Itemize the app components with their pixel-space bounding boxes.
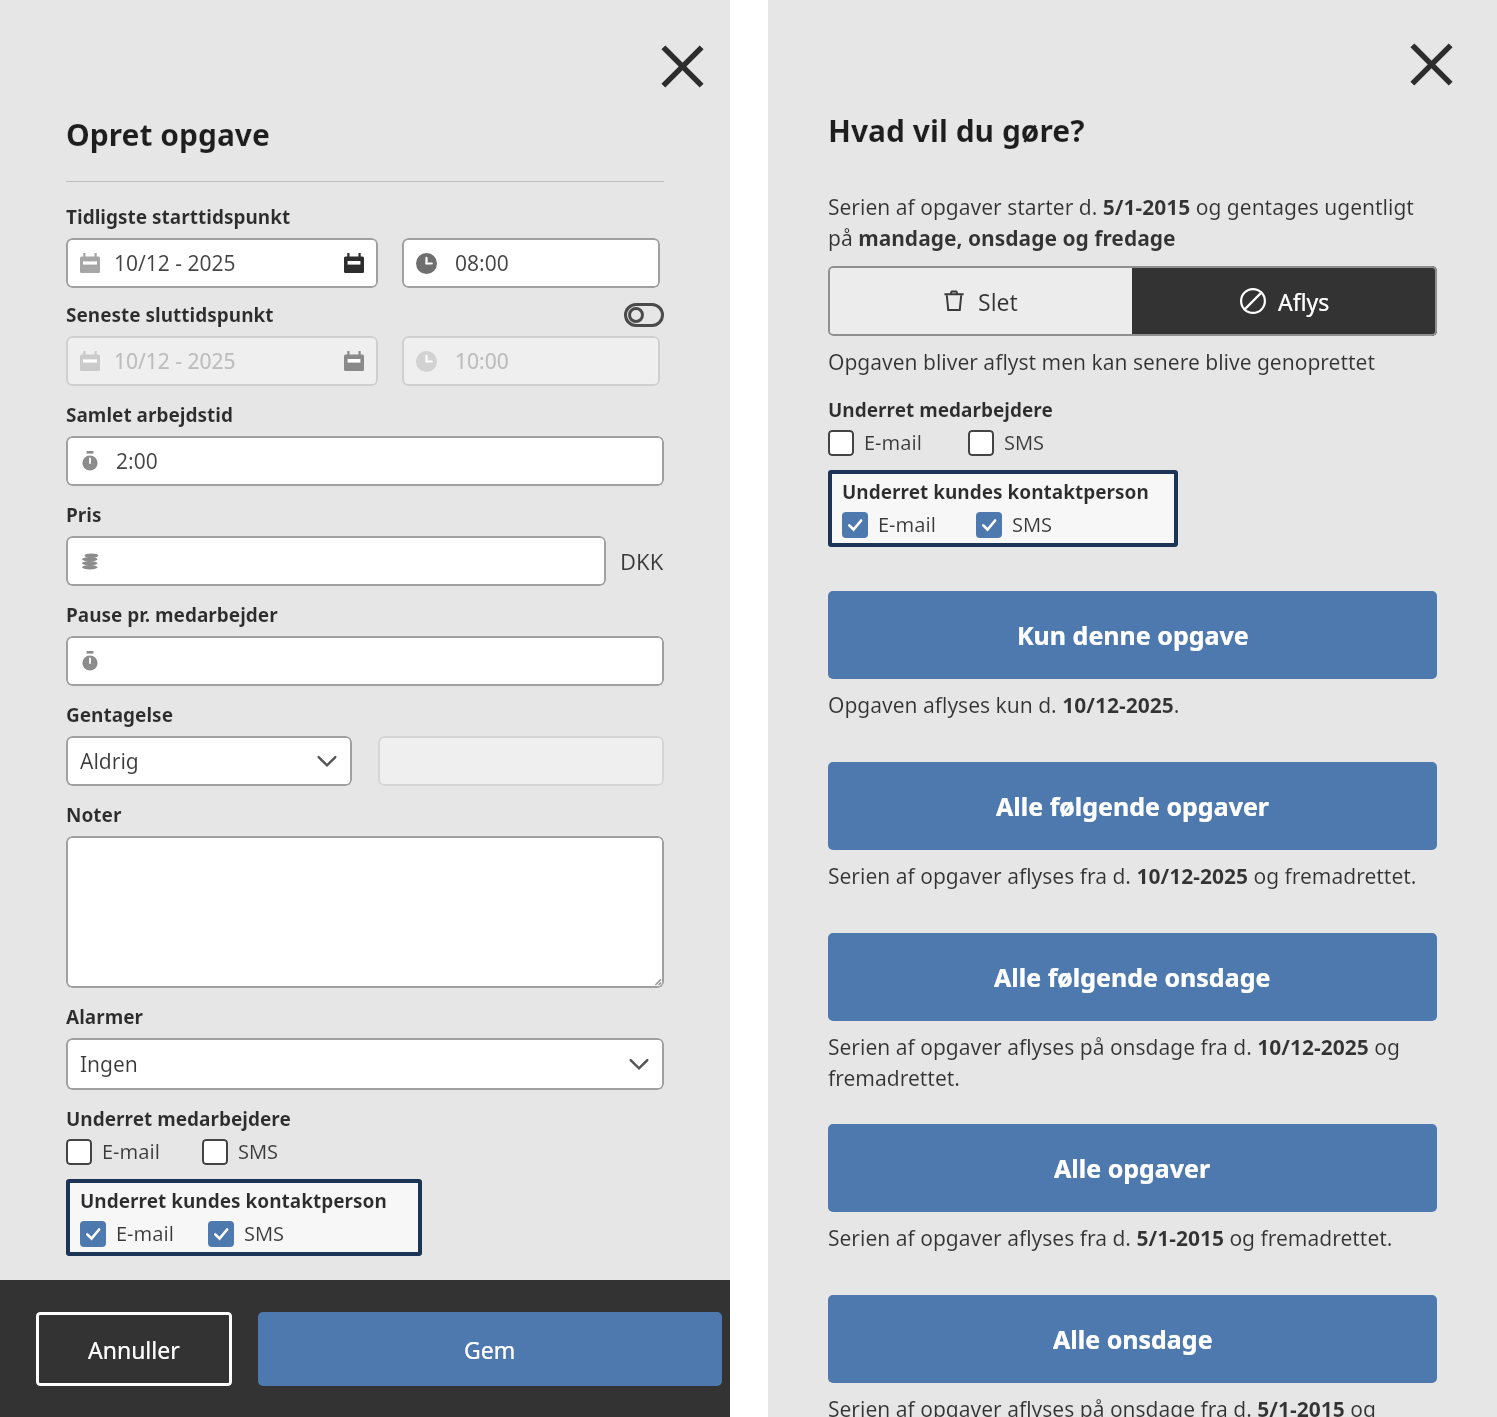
staticText: Alle følgende opgaver	[996, 789, 1270, 823]
staticText: E-mail	[878, 511, 936, 538]
button[interactable]	[66, 536, 606, 586]
staticText: Underret kundes kontaktperson	[842, 479, 1149, 505]
staticText: Alle onsdage	[1053, 1322, 1213, 1356]
button[interactable]: E-mail	[828, 429, 926, 456]
staticText: 10/12 - 2025	[114, 347, 236, 376]
staticText: Serien af opgaver aflyses fra d. 5/1-201…	[828, 1224, 1393, 1253]
button[interactable]: Ingen	[66, 1038, 664, 1090]
staticText: Alle opgaver	[1054, 1151, 1211, 1185]
staticText: Aldrig	[80, 747, 139, 776]
staticText: Annuller	[88, 1334, 180, 1365]
staticText: Noter	[66, 802, 122, 828]
staticText: DKK	[620, 546, 664, 576]
staticText: Serien af opgaver aflyses fra d. 10/12-2…	[828, 862, 1417, 891]
staticText: Slet	[978, 286, 1018, 317]
staticText: 10/12 - 2025	[114, 249, 236, 278]
button[interactable]	[66, 636, 664, 686]
button[interactable]: Kun denne opgave	[828, 591, 1437, 679]
button[interactable]: Luk	[1405, 38, 1457, 90]
staticText: Samlet arbejdstid	[66, 402, 233, 428]
button[interactable]: 08:00	[402, 238, 660, 288]
staticText: Seneste sluttidspunkt	[66, 302, 274, 328]
staticText: Serien af opgaver aflyses på onsdage fra…	[828, 1395, 1437, 1417]
button[interactable]: 10:00	[402, 336, 660, 386]
button[interactable]: 10/12 - 2025	[66, 336, 378, 386]
staticText: SMS	[1012, 511, 1053, 538]
staticText: Alle følgende onsdage	[994, 960, 1271, 994]
staticText: Aflys	[1278, 286, 1330, 317]
staticText: E-mail	[116, 1220, 174, 1247]
button[interactable]: Alle opgaver	[828, 1124, 1437, 1212]
button[interactable]: Slå seneste sluttidspunkt til	[624, 303, 664, 327]
staticText: Opgaven bliver aflyst men kan senere bli…	[828, 348, 1375, 377]
staticText: Hvad vil du gøre?	[828, 110, 1085, 151]
staticText: Alarmer	[66, 1004, 144, 1030]
button[interactable]: Aflys	[1132, 266, 1437, 336]
staticText: Underret kundes kontaktperson	[80, 1188, 387, 1214]
staticText: Underret medarbejdere	[828, 397, 1053, 423]
button[interactable]: E-mail	[842, 511, 940, 538]
button[interactable]: Gem	[258, 1312, 722, 1386]
button[interactable]: SMS	[208, 1220, 289, 1247]
button[interactable]: SMS	[202, 1138, 283, 1165]
staticText: Pris	[66, 502, 102, 528]
button[interactable]: Alle følgende opgaver	[828, 762, 1437, 850]
button[interactable]: Slet	[828, 266, 1132, 336]
staticText: Serien af opgaver aflyses på onsdage fra…	[828, 1033, 1437, 1092]
staticText: Serien af opgaver starter d. 5/1-2015 og…	[828, 193, 1437, 252]
button[interactable]	[66, 836, 664, 988]
staticText: Gem	[464, 1334, 516, 1365]
staticText: Tidligste starttidspunkt	[66, 204, 291, 230]
staticText: Opret opgave	[66, 114, 270, 155]
button[interactable]: Alle følgende onsdage	[828, 933, 1437, 1021]
staticText: Underret medarbejdere	[66, 1106, 291, 1132]
button[interactable]	[378, 736, 664, 786]
button[interactable]: Alle onsdage	[828, 1295, 1437, 1383]
staticText: SMS	[1004, 429, 1045, 456]
staticText: SMS	[244, 1220, 285, 1247]
staticText: Gentagelse	[66, 702, 173, 728]
staticText: Kun denne opgave	[1017, 618, 1249, 652]
staticText: 10:00	[455, 347, 509, 376]
staticText: Pause pr. medarbejder	[66, 602, 278, 628]
staticText: SMS	[238, 1138, 279, 1165]
staticText: E-mail	[864, 429, 922, 456]
button[interactable]: Aldrig	[66, 736, 352, 786]
button[interactable]: SMS	[976, 511, 1057, 538]
button[interactable]: SMS	[968, 429, 1049, 456]
staticText: Opgaven aflyses kun d. 10/12-2025.	[828, 691, 1180, 720]
button[interactable]: E-mail	[80, 1220, 178, 1247]
button[interactable]: 10/12 - 2025	[66, 238, 378, 288]
staticText: Ingen	[80, 1050, 138, 1079]
staticText: E-mail	[102, 1138, 160, 1165]
button[interactable]: E-mail	[66, 1138, 164, 1165]
button[interactable]: Luk	[656, 40, 708, 92]
button[interactable]: Annuller	[36, 1312, 232, 1386]
staticText: 2:00	[116, 447, 158, 476]
staticText: 08:00	[455, 249, 509, 278]
button[interactable]: 2:00	[66, 436, 664, 486]
